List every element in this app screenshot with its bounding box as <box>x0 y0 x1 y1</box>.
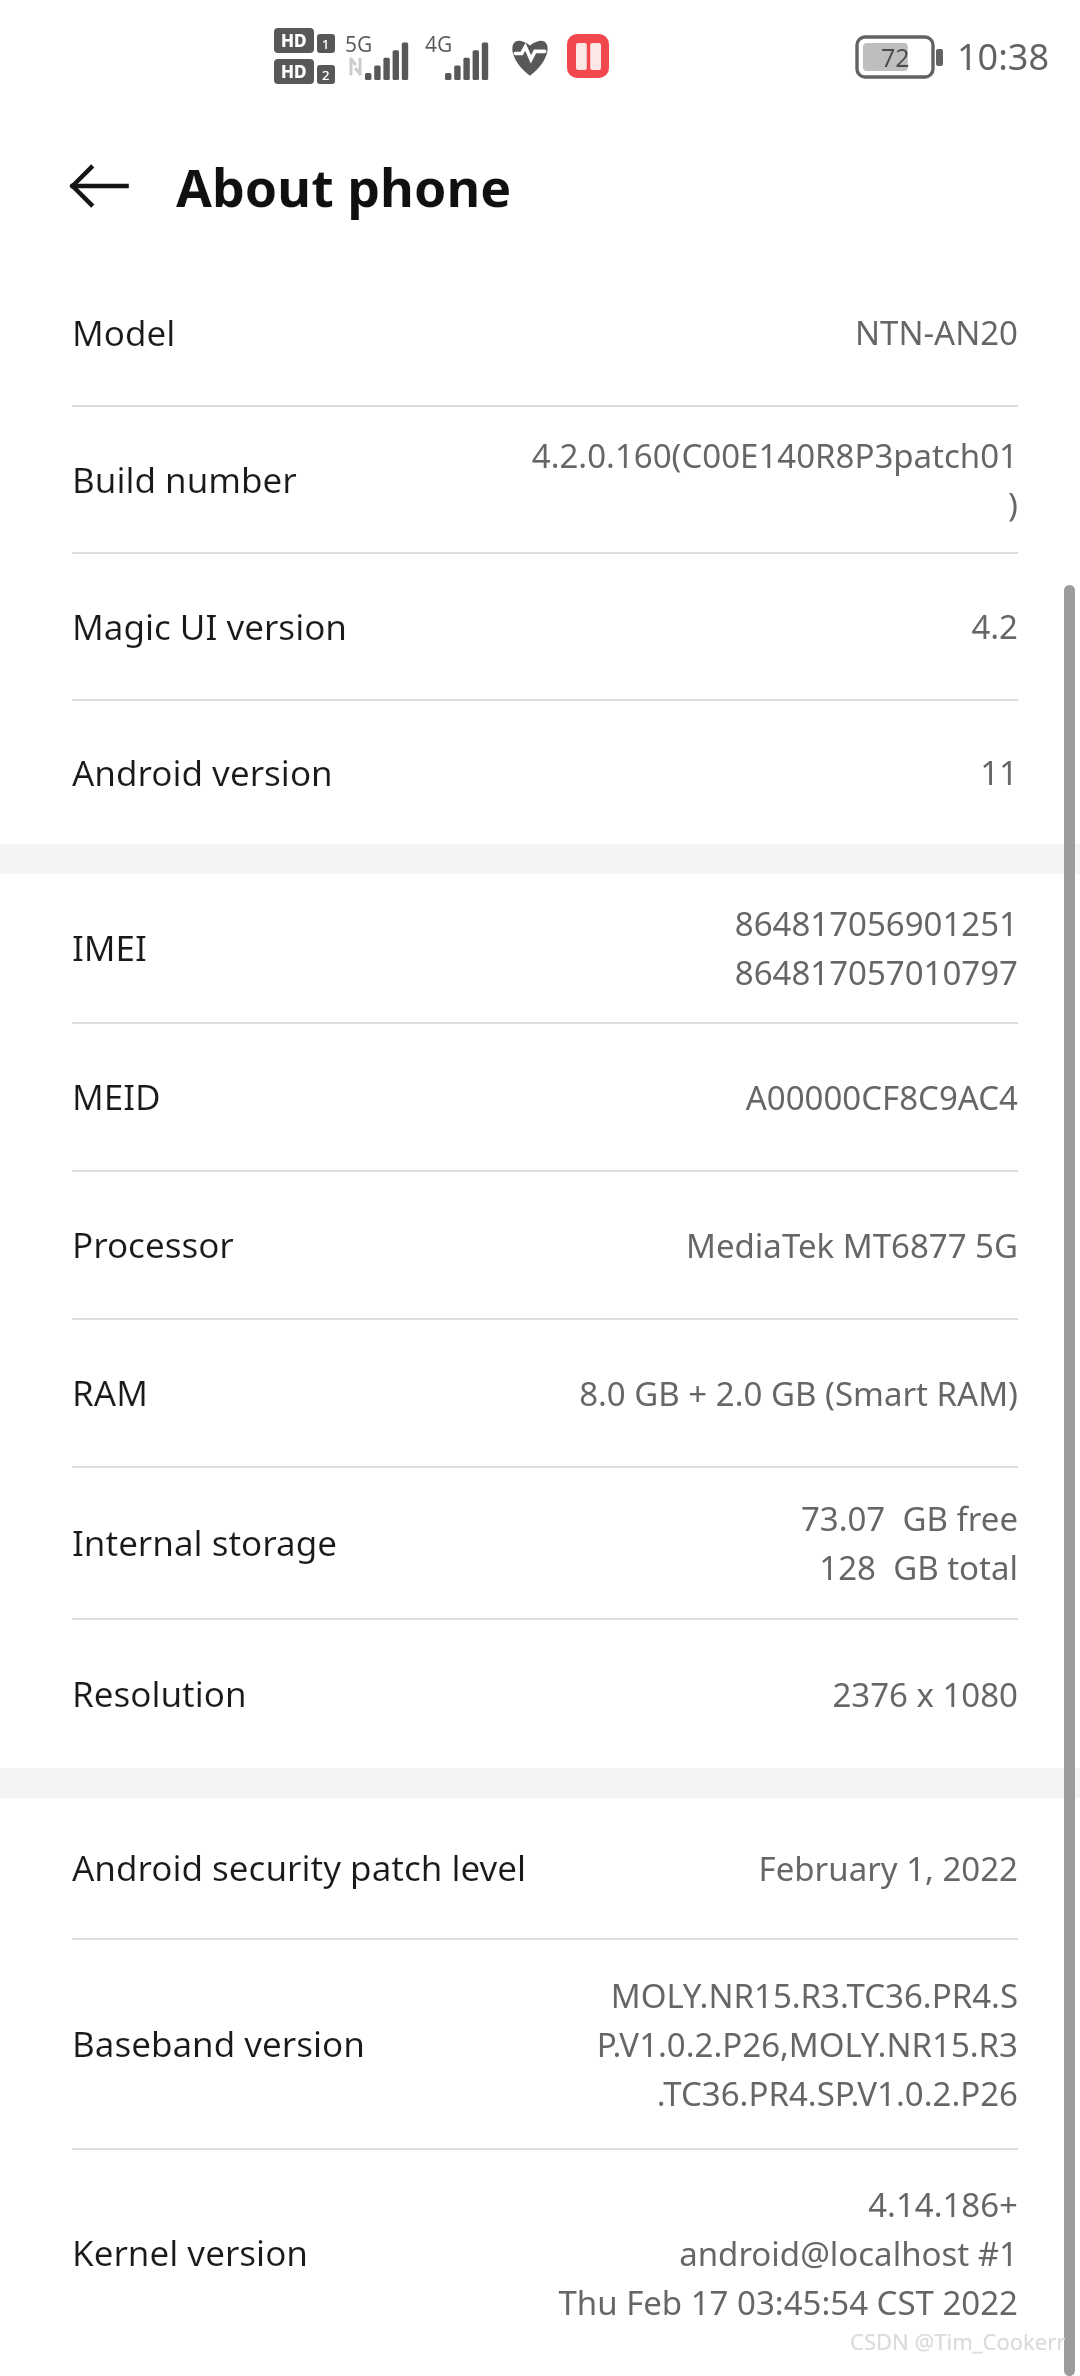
staticText: Magic UI version <box>72 603 347 651</box>
button[interactable]: Android version <box>0 701 1080 844</box>
staticText: HD <box>281 29 307 52</box>
staticText: 10:38 <box>957 32 1050 81</box>
staticText: ) <box>1008 482 1018 527</box>
staticText: 5G <box>345 30 373 59</box>
staticText: RAM <box>72 1369 148 1417</box>
staticText: About phone <box>176 151 512 222</box>
button[interactable]: Build number <box>0 407 1080 552</box>
staticText: Android security patch level <box>72 1844 527 1892</box>
staticText: HD <box>281 60 307 83</box>
staticText: MediaTek MT6877 5G <box>686 1223 1018 1268</box>
staticText: CSDN @Tim_Cookerr <box>850 2326 1066 2356</box>
button[interactable]: Kernel version <box>0 2150 1080 2356</box>
staticText: 4G <box>425 30 453 59</box>
staticText: Kernel version <box>72 2229 308 2277</box>
staticText: 11 <box>980 750 1018 795</box>
button[interactable]: Internal storage <box>0 1468 1080 1618</box>
staticText: 4.2 <box>971 604 1018 649</box>
staticText: 4.2.0.160(C00E140R8P3patch01 <box>531 433 1018 478</box>
staticText: 2376 x 1080 <box>832 1672 1018 1717</box>
staticText: Build number <box>72 456 297 504</box>
staticText: 864817057010797 <box>734 950 1018 995</box>
button[interactable]: Processor <box>0 1172 1080 1318</box>
staticText: NTN-AN20 <box>854 310 1018 355</box>
staticText: 1 <box>322 35 330 53</box>
button[interactable]: Baseband version <box>0 1940 1080 2148</box>
button[interactable]: Model <box>0 260 1080 405</box>
button[interactable]: Resolution <box>0 1620 1080 1768</box>
staticText: 73.07 GB free <box>800 1496 1018 1541</box>
staticText: Baseband version <box>72 2020 365 2068</box>
button[interactable]: IMEI <box>0 874 1080 1022</box>
staticText: 128 GB total <box>819 1545 1018 1590</box>
staticText: MOLY.NR15.R3.TC36.PR4.S <box>610 1973 1018 2018</box>
button[interactable]: Back <box>56 143 142 229</box>
staticText: IMEI <box>72 924 147 972</box>
staticText: A00000CF8C9AC4 <box>745 1075 1018 1120</box>
staticText: Internal storage <box>72 1519 337 1567</box>
staticText: 8.0 GB + 2.0 GB (Smart RAM) <box>579 1371 1018 1416</box>
staticText: P.V1.0.2.P26,MOLY.NR15.R3 <box>596 2022 1018 2067</box>
staticText: .TC36.PR4.SP.V1.0.2.P26 <box>656 2071 1018 2116</box>
staticText: 864817056901251 <box>734 901 1018 946</box>
staticText: MEID <box>72 1073 161 1121</box>
staticText: Thu Feb 17 03:45:54 CST 2022 <box>558 2280 1018 2325</box>
staticText: Model <box>72 309 176 357</box>
staticText: Resolution <box>72 1670 247 1718</box>
staticText: 2 <box>322 66 330 84</box>
staticText: 4.14.186+ <box>868 2182 1018 2227</box>
staticText: Android version <box>72 749 333 797</box>
staticText: February 1, 2022 <box>758 1846 1018 1891</box>
button[interactable]: Magic UI version <box>0 554 1080 699</box>
button[interactable]: Android security patch level <box>0 1798 1080 1938</box>
button[interactable]: RAM <box>0 1320 1080 1466</box>
staticText: android@localhost #1 <box>679 2231 1018 2276</box>
button[interactable]: MEID <box>0 1024 1080 1170</box>
staticText: Processor <box>72 1221 234 1269</box>
staticText: 72 <box>881 40 910 74</box>
